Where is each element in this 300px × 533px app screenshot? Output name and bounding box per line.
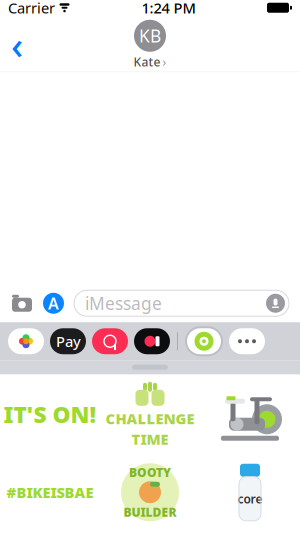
button[interactable]: It's On sticker — [0, 375, 100, 453]
staticText: iMessage — [85, 292, 162, 315]
staticText: CHALLENGE — [105, 409, 194, 428]
button[interactable]: Spin bike sticker — [200, 375, 300, 453]
staticText: KB — [139, 24, 161, 47]
staticText: BOOTY — [129, 464, 171, 480]
button[interactable]: Bike is bae sticker — [0, 453, 100, 531]
button[interactable]: iMessage — [74, 290, 289, 316]
button[interactable]: Photos — [8, 328, 44, 354]
button[interactable]: More apps — [229, 328, 265, 354]
button[interactable]: Camera — [11, 294, 33, 312]
staticText: 1:24 PM — [141, 0, 195, 17]
button[interactable]: App Store — [43, 293, 64, 314]
staticText: Pay — [56, 331, 81, 351]
staticText: #BIKEISBAE — [6, 482, 93, 502]
staticText: Kate — [133, 54, 160, 70]
button[interactable]: Apple Pay — [50, 328, 86, 354]
button[interactable]: Digital Touch — [134, 328, 170, 354]
button[interactable]: Booty Builder sticker — [100, 453, 200, 531]
button[interactable]: Sticker pack — [185, 326, 223, 356]
button[interactable]: Challenge Time sticker — [100, 375, 200, 453]
staticText: Carrier — [8, 0, 55, 17]
button[interactable]: Water bottle sticker — [200, 453, 300, 531]
staticText: IT'S ON! — [3, 399, 96, 429]
staticText: BUILDER — [123, 504, 176, 520]
staticText: A — [48, 293, 59, 314]
staticText: TIME — [131, 429, 168, 449]
button[interactable]: Back — [0, 23, 34, 67]
button[interactable]: Music — [92, 328, 128, 354]
staticText: core — [237, 491, 262, 507]
staticText: ‹ — [11, 20, 23, 70]
staticText: › — [162, 54, 166, 70]
